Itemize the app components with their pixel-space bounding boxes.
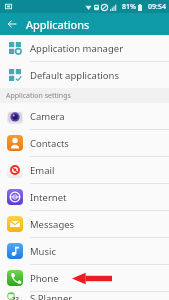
staticText: S Planner bbox=[30, 292, 73, 300]
button[interactable]: Email bbox=[0, 157, 169, 183]
staticText: Applications bbox=[26, 17, 90, 32]
button[interactable]: Music bbox=[0, 238, 169, 264]
staticText: Application settings bbox=[6, 91, 71, 101]
button[interactable]: Internet bbox=[0, 184, 169, 210]
button[interactable]: Messages bbox=[0, 211, 169, 237]
button[interactable]: Phone bbox=[0, 265, 169, 291]
button[interactable]: Application manager bbox=[0, 35, 169, 61]
staticText: Messages bbox=[30, 218, 75, 231]
staticText: Internet bbox=[30, 191, 67, 204]
staticText: Music bbox=[30, 245, 57, 258]
staticText: 81% bbox=[122, 2, 136, 12]
staticText: Contacts bbox=[30, 137, 69, 150]
button[interactable]: Navigate up bbox=[4, 16, 20, 32]
button[interactable]: 22 bbox=[0, 292, 169, 300]
staticText: 09:54 bbox=[148, 2, 166, 12]
staticText: Application manager bbox=[30, 42, 124, 55]
staticText: Phone bbox=[30, 272, 59, 285]
button[interactable]: Contacts bbox=[0, 130, 169, 156]
button[interactable]: Default applications bbox=[0, 62, 169, 88]
staticText: Camera bbox=[30, 110, 65, 123]
staticText: Email bbox=[30, 164, 55, 177]
staticText: Default applications bbox=[30, 69, 119, 82]
button[interactable]: Camera bbox=[0, 103, 169, 129]
staticText: 22 bbox=[12, 295, 19, 300]
